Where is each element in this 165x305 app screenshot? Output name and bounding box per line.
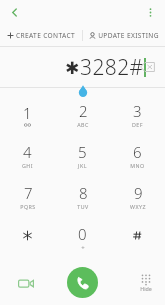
staticText: ✱ bbox=[65, 58, 80, 78]
staticText: ABC bbox=[77, 121, 89, 128]
staticText: JKL bbox=[78, 162, 87, 169]
staticText: + bbox=[81, 244, 85, 252]
button[interactable]: 8 bbox=[55, 176, 110, 217]
staticText: 8 bbox=[79, 183, 88, 203]
button[interactable]: Call bbox=[67, 267, 98, 298]
button[interactable]: More options bbox=[139, 1, 161, 23]
staticText: 3282# bbox=[80, 53, 144, 82]
button[interactable]: 5 bbox=[55, 135, 110, 176]
staticText: 6 bbox=[133, 142, 142, 162]
button[interactable]: 0 bbox=[55, 217, 110, 258]
staticText: CREATE CONTACT bbox=[16, 31, 75, 40]
button[interactable]: CREATE CONTACT bbox=[0, 31, 82, 40]
button[interactable]: 7 bbox=[0, 176, 55, 217]
button[interactable]: Backspace bbox=[136, 56, 158, 78]
staticText: TUV bbox=[77, 203, 89, 210]
staticText: PQRS bbox=[20, 203, 36, 210]
button[interactable]: 3 bbox=[110, 94, 165, 135]
button[interactable]: 2 bbox=[55, 94, 110, 135]
staticText: 5 bbox=[78, 142, 87, 162]
staticText: GHI bbox=[22, 162, 33, 169]
button[interactable] bbox=[0, 217, 55, 258]
staticText: Hide bbox=[140, 285, 152, 292]
button[interactable]: 1 bbox=[0, 94, 55, 135]
staticText: 7 bbox=[24, 183, 33, 203]
staticText: 0 bbox=[78, 224, 87, 244]
staticText: DEF bbox=[132, 121, 143, 128]
staticText: MNO bbox=[130, 162, 145, 169]
staticText: 4 bbox=[23, 142, 32, 162]
staticText: UPDATE EXISTING bbox=[98, 31, 159, 40]
button[interactable]: UPDATE EXISTING bbox=[83, 31, 165, 40]
button[interactable]: 9 bbox=[110, 176, 165, 217]
button[interactable]: 4 bbox=[0, 135, 55, 176]
staticText: 2 bbox=[79, 101, 88, 121]
button[interactable]: Video call bbox=[13, 270, 39, 296]
staticText: WXYZ bbox=[130, 203, 146, 210]
staticText: 1 bbox=[23, 103, 32, 123]
button[interactable] bbox=[110, 217, 165, 258]
staticText: 3 bbox=[133, 101, 142, 121]
staticText: 9 bbox=[134, 183, 143, 203]
button[interactable]: Hide keypad bbox=[140, 274, 152, 292]
button[interactable]: 6 bbox=[110, 135, 165, 176]
button[interactable]: Back bbox=[3, 1, 25, 23]
